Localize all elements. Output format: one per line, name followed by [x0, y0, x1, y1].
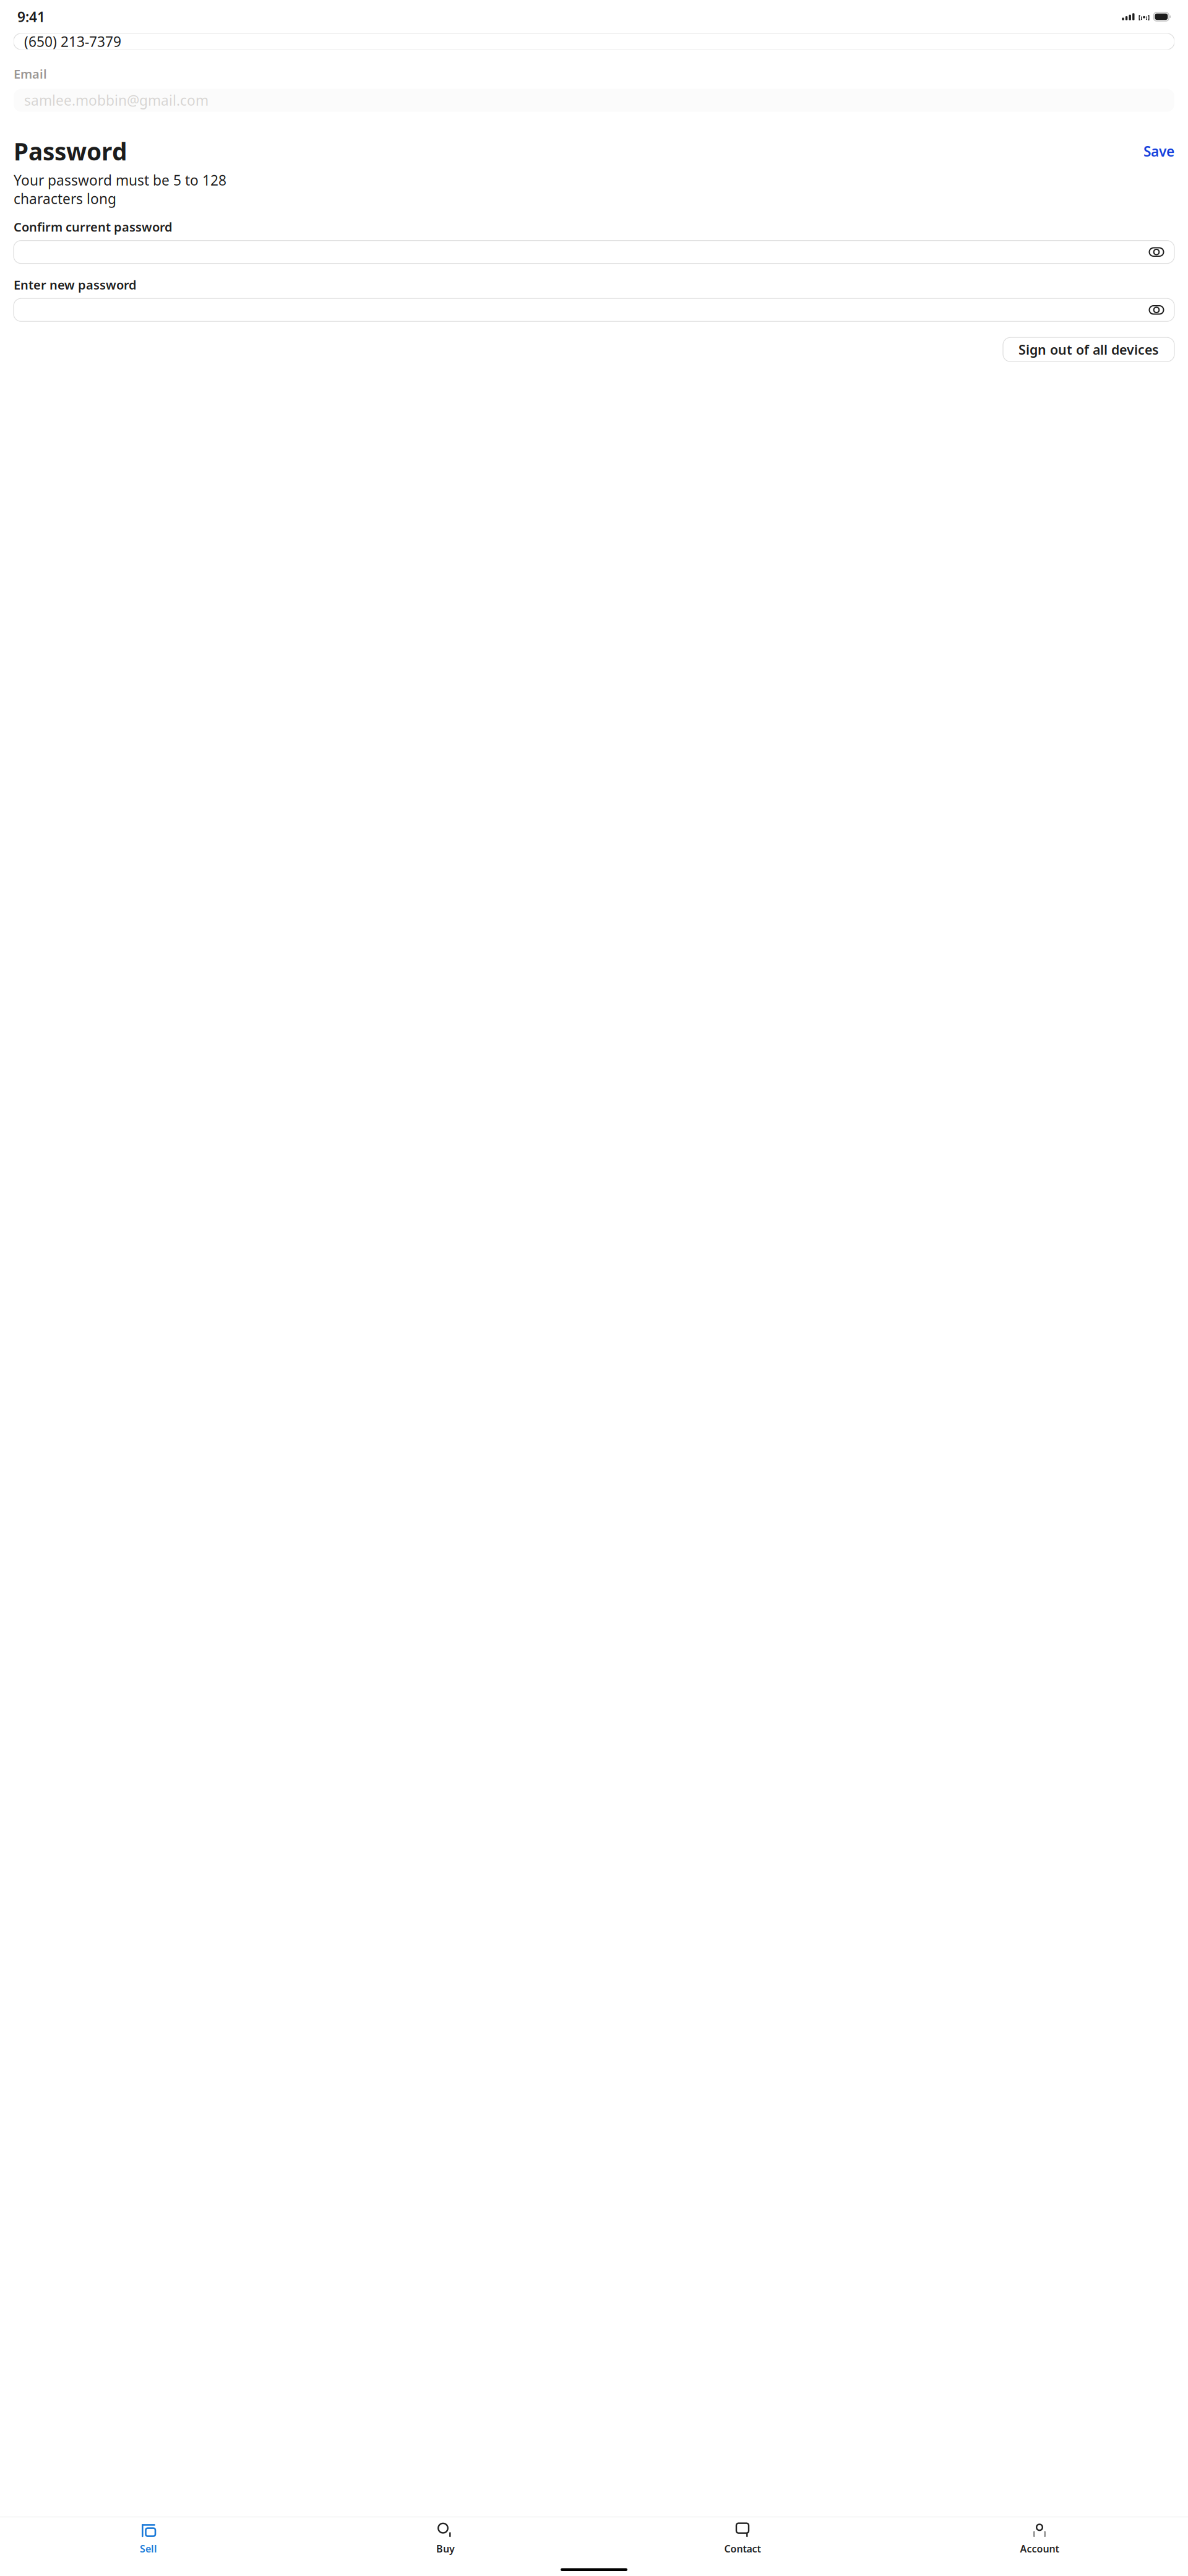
button[interactable]: Save [1134, 137, 1174, 165]
button[interactable]: Contact [594, 2517, 891, 2558]
staticText: Save [1143, 142, 1174, 160]
staticText: Enter new password [14, 276, 137, 293]
button[interactable]: Account [891, 2517, 1188, 2558]
staticText: Sign out of all devices [1018, 341, 1159, 358]
button[interactable]: Buy [297, 2517, 594, 2558]
button[interactable]: Sign out of all devices [1003, 337, 1174, 362]
staticText: (650) 213-7379 [24, 32, 121, 51]
staticText: Your password must be 5 to 128 character… [14, 171, 226, 208]
staticText: Confirm current password [14, 219, 173, 235]
staticText: samlee.mobbin@gmail.com [24, 91, 209, 110]
staticText: Contact [724, 2542, 761, 2555]
staticText: Buy [436, 2542, 455, 2555]
staticText: 9:41 [17, 7, 45, 26]
button[interactable] [14, 298, 1174, 321]
staticText: Account [1020, 2542, 1059, 2555]
button[interactable]: Sell [0, 2517, 297, 2558]
staticText: Email [14, 66, 47, 82]
staticText: Password [14, 135, 127, 167]
button[interactable] [14, 241, 1174, 263]
staticText: Sell [140, 2542, 157, 2555]
